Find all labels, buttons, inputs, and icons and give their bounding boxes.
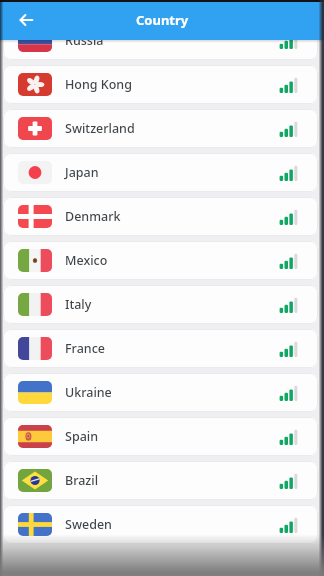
staticText: Sweden <box>65 516 112 533</box>
button[interactable]: Mexico <box>3 241 318 280</box>
button[interactable]: Denmark <box>3 197 318 236</box>
button[interactable] <box>10 4 42 36</box>
button[interactable]: Italy <box>3 285 318 324</box>
staticText: Denmark <box>65 208 121 225</box>
button[interactable]: Hong Kong <box>3 65 318 104</box>
button[interactable]: Japan <box>3 153 318 192</box>
staticText: Japan <box>65 164 99 181</box>
button[interactable]: France <box>3 329 318 368</box>
button[interactable]: Switzerland <box>3 109 318 148</box>
staticText: Country <box>136 11 189 29</box>
button[interactable]: Russia <box>3 21 318 60</box>
staticText: Brazil <box>65 472 99 489</box>
staticText: Switzerland <box>65 120 135 137</box>
staticText: Italy <box>65 296 92 313</box>
button[interactable]: Brazil <box>3 461 318 500</box>
staticText: Mexico <box>65 252 108 269</box>
button[interactable]: Sweden <box>3 505 318 544</box>
button[interactable]: Spain <box>3 417 318 456</box>
button[interactable]: Ukraine <box>3 373 318 412</box>
staticText: Spain <box>65 428 98 445</box>
staticText: Russia <box>65 32 104 49</box>
staticText: France <box>65 340 105 357</box>
staticText: Hong Kong <box>65 76 132 93</box>
staticText: Ukraine <box>65 384 112 401</box>
